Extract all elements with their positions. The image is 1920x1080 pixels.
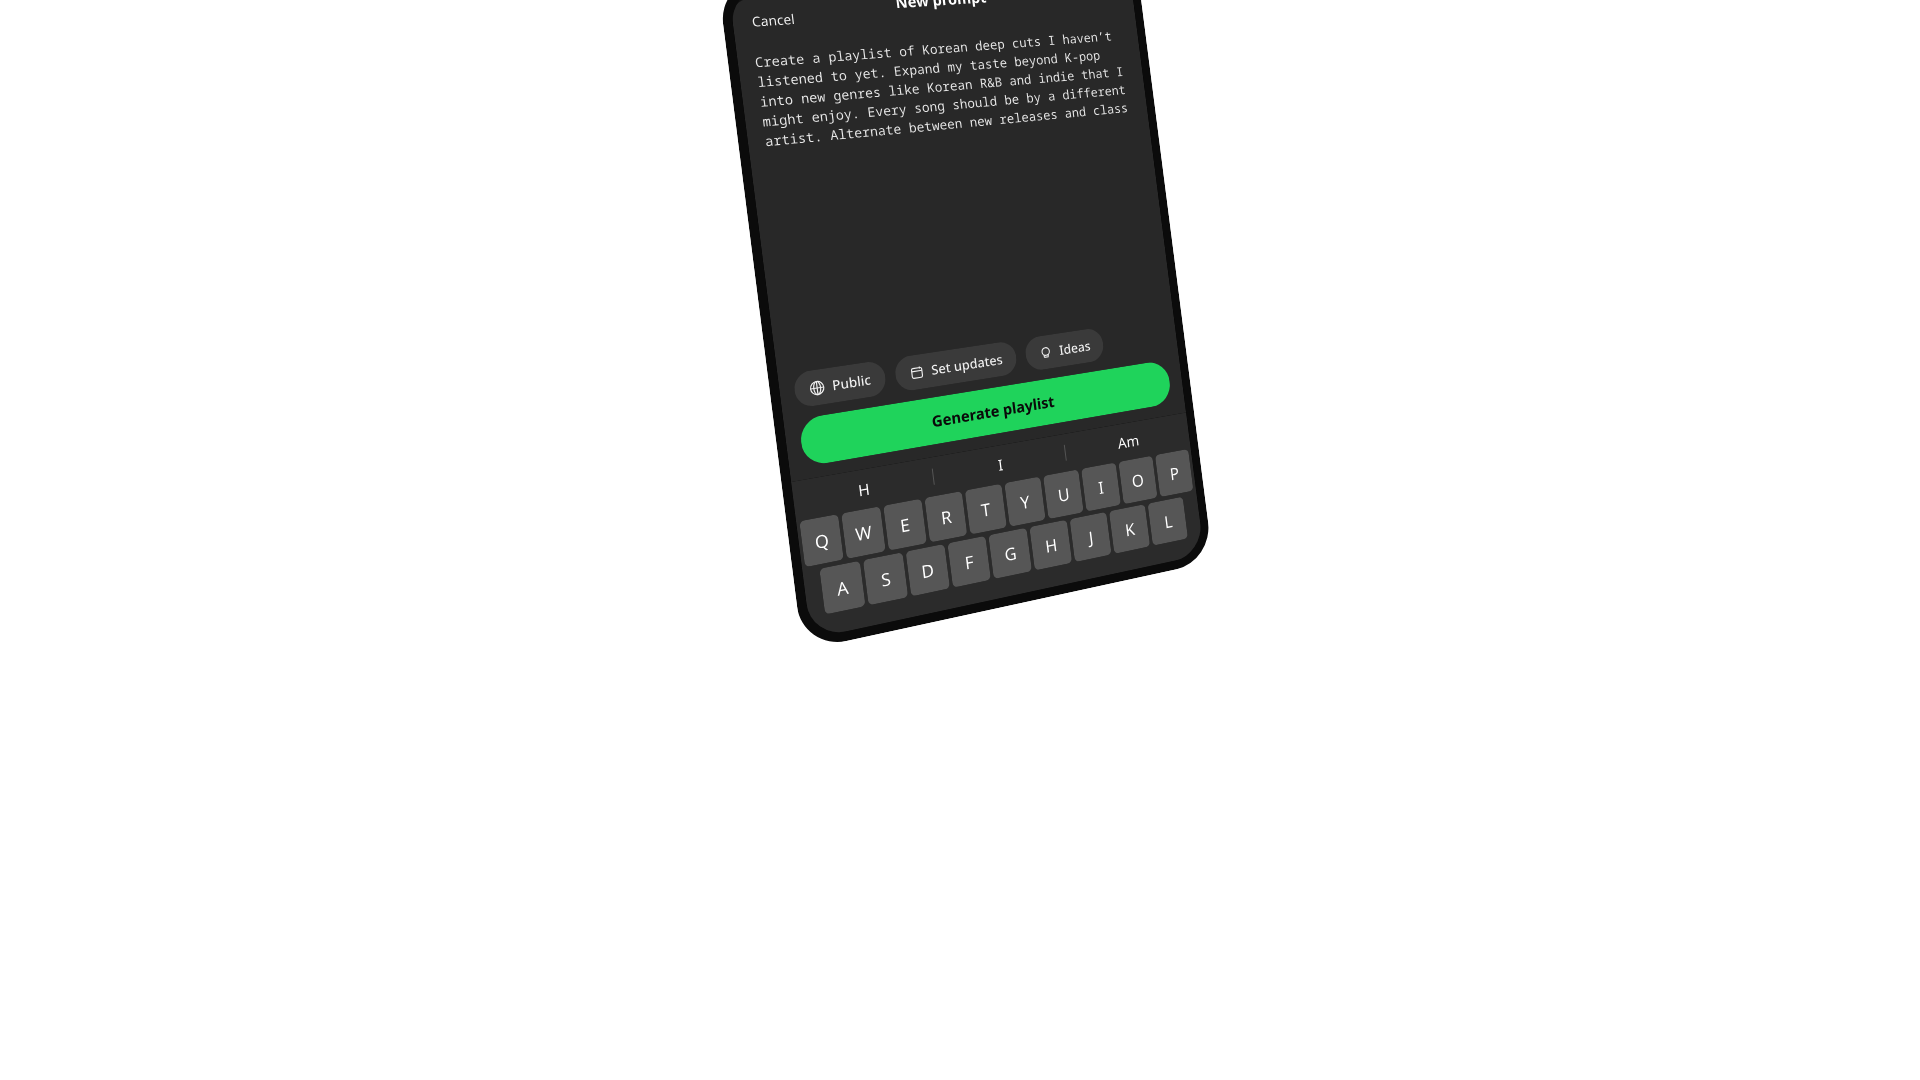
- button[interactable]: K: [1109, 504, 1150, 554]
- button[interactable]: W: [841, 506, 886, 559]
- button[interactable]: Y: [1004, 476, 1046, 527]
- staticText: Ideas: [1058, 337, 1091, 359]
- button[interactable]: I: [1081, 462, 1121, 512]
- button[interactable]: Cancel: [746, 5, 801, 35]
- button[interactable]: Q: [799, 514, 844, 567]
- button[interactable]: Public: [792, 360, 888, 409]
- button[interactable]: D: [905, 544, 950, 596]
- button[interactable]: S: [863, 552, 908, 605]
- staticText: D: [920, 558, 936, 584]
- staticText: R: [940, 504, 953, 530]
- staticText: Q: [813, 528, 831, 554]
- button[interactable]: E: [883, 498, 927, 551]
- staticText: Create a playlist of Korean deep cuts I …: [754, 26, 1137, 150]
- button[interactable]: H: [1029, 520, 1072, 570]
- button[interactable]: I: [931, 434, 1067, 496]
- staticText: I: [997, 454, 1005, 475]
- button[interactable]: T: [965, 484, 1007, 535]
- staticText: Y: [1019, 490, 1031, 514]
- staticText: G: [1003, 541, 1018, 566]
- staticText: H: [1044, 533, 1059, 558]
- staticText: T: [980, 497, 992, 522]
- button[interactable]: U: [1043, 469, 1084, 519]
- staticText: Generate playlist: [930, 391, 1056, 431]
- staticText: S: [880, 566, 893, 592]
- button[interactable]: L: [1147, 497, 1188, 546]
- staticText: K: [1124, 517, 1136, 541]
- button[interactable]: Ideas: [1023, 327, 1105, 372]
- staticText: Public: [831, 370, 872, 394]
- staticText: New prompt: [894, 0, 988, 12]
- button[interactable]: Set updates: [893, 340, 1018, 393]
- button[interactable]: P: [1155, 449, 1193, 497]
- staticText: Cancel: [751, 9, 796, 31]
- button[interactable]: A: [819, 561, 866, 615]
- button[interactable]: Generate playlist: [798, 360, 1172, 467]
- button[interactable]: H: [791, 458, 935, 522]
- staticText: P: [1168, 461, 1181, 485]
- staticText: A: [835, 575, 850, 601]
- staticText: J: [1087, 526, 1095, 549]
- button[interactable]: R: [924, 491, 967, 543]
- button[interactable]: G: [988, 528, 1032, 579]
- staticText: W: [854, 520, 873, 546]
- button[interactable]: Am: [1063, 412, 1191, 471]
- staticText: H: [857, 478, 872, 501]
- staticText: I: [1097, 476, 1105, 499]
- staticText: Set updates: [930, 350, 1004, 379]
- button[interactable]: O: [1118, 456, 1158, 504]
- staticText: O: [1130, 468, 1146, 493]
- staticText: U: [1056, 482, 1071, 507]
- staticText: Am: [1116, 430, 1140, 453]
- button[interactable]: F: [947, 536, 991, 588]
- staticText: L: [1163, 510, 1174, 533]
- staticText: E: [899, 512, 912, 538]
- staticText: F: [963, 550, 975, 575]
- button[interactable]: J: [1069, 512, 1112, 562]
